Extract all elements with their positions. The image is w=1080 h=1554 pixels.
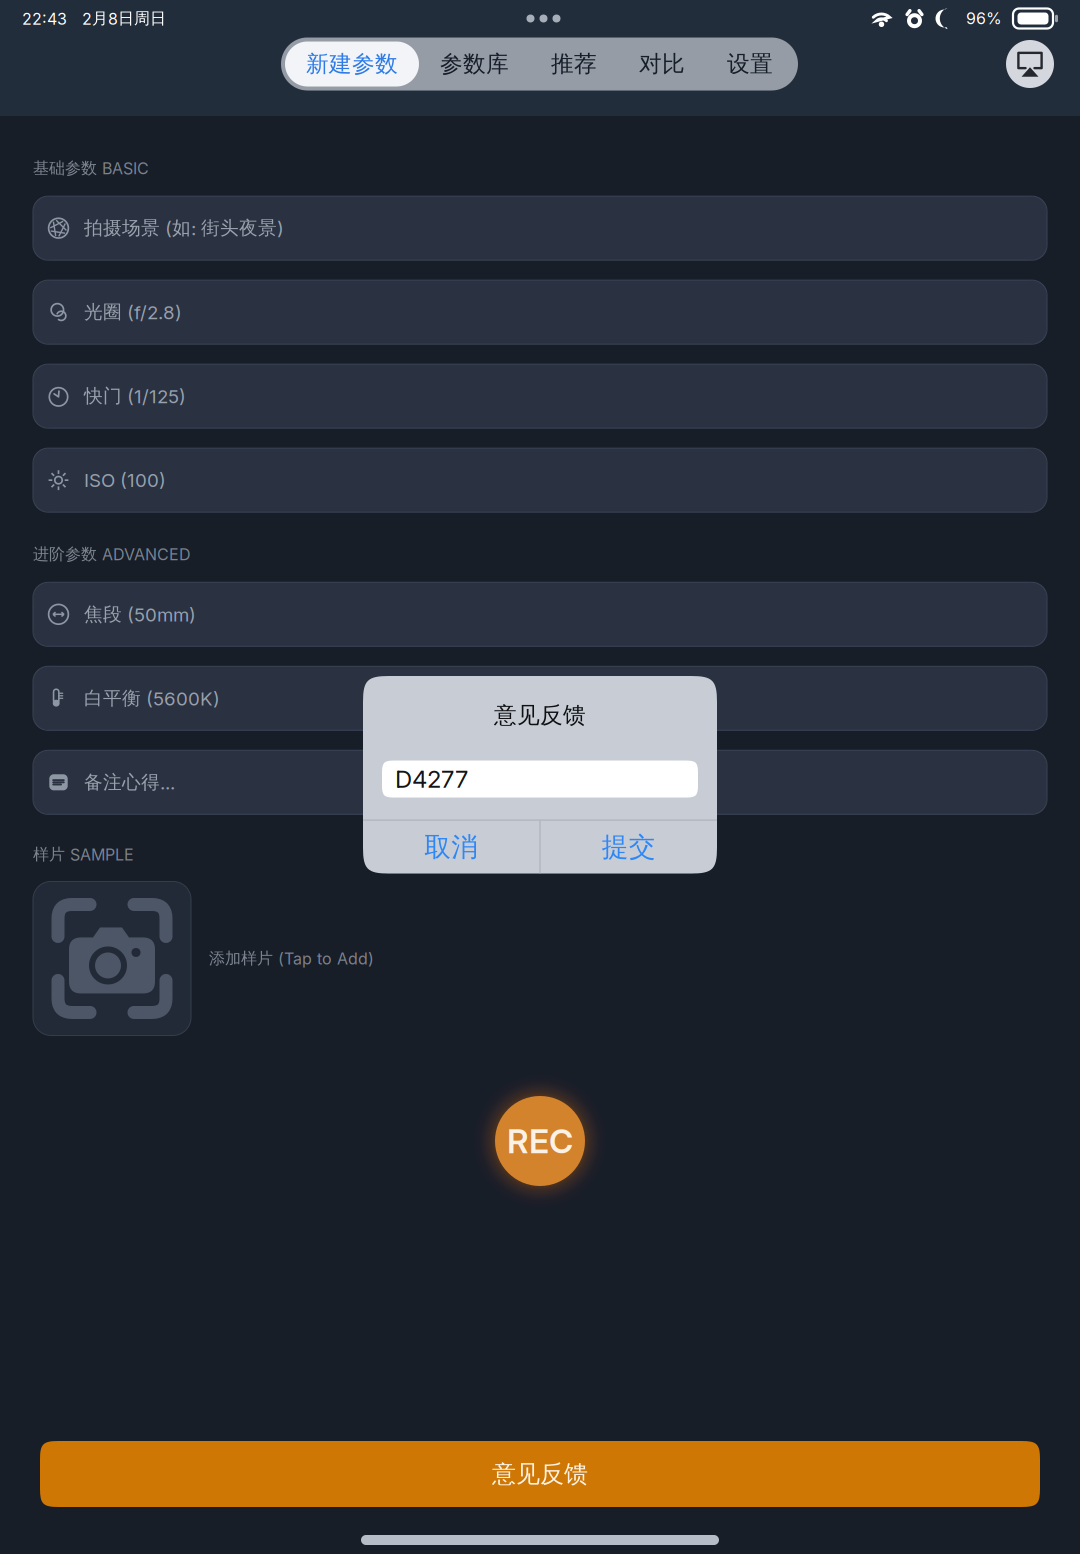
staticText: 提交 (602, 830, 656, 864)
staticText: 意见反馈 (492, 1459, 588, 1489)
button[interactable]: AirPlay (1006, 40, 1054, 88)
staticText: 对比 (639, 50, 685, 78)
staticText: ISO (100) (84, 469, 166, 491)
staticText: 取消 (424, 830, 478, 864)
button[interactable]: 对比 (618, 41, 706, 86)
button[interactable]: 光圈 (f/2.8) (33, 280, 1047, 344)
staticText: 96% (966, 9, 1002, 28)
staticText: D4277 (395, 764, 468, 793)
staticText: 意见反馈 (494, 701, 586, 730)
button[interactable]: 意见反馈 (40, 1441, 1040, 1507)
staticText: 设置 (727, 50, 773, 78)
staticText: 快门 (1/125) (84, 384, 186, 408)
staticText: 推荐 (551, 50, 597, 78)
button[interactable]: 提交 (540, 821, 717, 874)
button[interactable]: 参数库 (419, 41, 530, 86)
button[interactable]: 取消 (363, 821, 539, 874)
staticText: 白平衡 (5600K) (84, 687, 220, 710)
staticText: 基础参数 BASIC (33, 158, 149, 178)
button[interactable]: 设置 (706, 41, 794, 86)
staticText: 进阶参数 ADVANCED (33, 544, 191, 564)
staticText: 参数库 (440, 50, 509, 78)
button[interactable]: 快门 (1/125) (33, 364, 1047, 428)
staticText: REC (507, 1121, 573, 1161)
button[interactable]: 推荐 (530, 41, 618, 86)
button[interactable]: 新建参数 (285, 41, 419, 86)
staticText: 焦段 (50mm) (84, 603, 196, 626)
staticText: 添加样片 (Tap to Add) (209, 948, 374, 969)
staticText: 新建参数 (306, 50, 398, 78)
button[interactable]: 拍摄场景 (如: 街头夜景) (33, 196, 1047, 260)
staticText: 22:43 2月8日周日 (22, 8, 166, 29)
button[interactable]: ISO (100) (33, 448, 1047, 512)
button[interactable]: 焦段 (50mm) (33, 582, 1047, 646)
staticText: 光圈 (f/2.8) (84, 300, 182, 324)
button[interactable]: 白平衡 (5600K) (33, 666, 1047, 730)
staticText: 拍摄场景 (如: 街头夜景) (84, 216, 284, 240)
staticText: 备注心得... (84, 771, 175, 794)
button[interactable]: 备注心得... (33, 750, 1047, 814)
button[interactable]: 添加样片 (33, 881, 191, 1035)
button[interactable]: REC (470, 1071, 610, 1211)
staticText: 样片 SAMPLE (33, 844, 134, 864)
